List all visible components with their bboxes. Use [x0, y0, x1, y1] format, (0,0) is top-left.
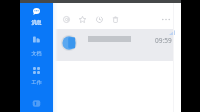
- staticText: 文档: [20, 50, 53, 56]
- button[interactable]: Mark as read: [63, 16, 70, 23]
- staticText: 工作: [20, 79, 53, 85]
- button[interactable]: Snooze: [96, 16, 103, 23]
- button[interactable]: Contact avatar: [61, 35, 77, 51]
- staticText: 09:59: [155, 36, 172, 45]
- button[interactable]: 文档: [20, 34, 53, 56]
- button[interactable]: 消息: [20, 6, 53, 25]
- button[interactable]: Star: [79, 16, 86, 23]
- staticText: 消息: [20, 19, 53, 25]
- button[interactable]: More options: [160, 14, 171, 25]
- button[interactable]: Delete: [112, 16, 119, 23]
- button[interactable]: More apps: [32, 99, 41, 108]
- button[interactable]: Contact avatar: [53, 29, 173, 61]
- button[interactable]: 工作: [20, 65, 53, 85]
